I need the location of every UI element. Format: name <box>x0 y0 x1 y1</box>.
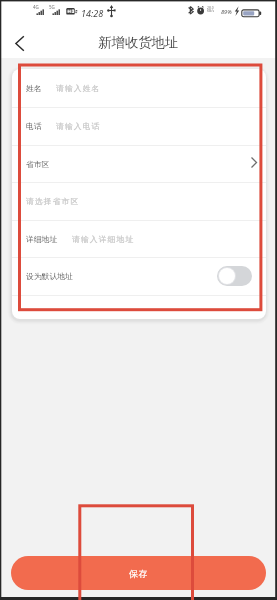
staticText: 4G <box>33 4 39 10</box>
staticText: 请输入电话 <box>56 121 101 131</box>
button[interactable]: 详细地址 <box>12 220 266 257</box>
button[interactable]: 请选择省市区 <box>12 182 266 220</box>
button[interactable]: 电话 <box>12 107 266 145</box>
staticText: 新增收货地址 <box>98 34 179 51</box>
staticText: 请输入姓名 <box>56 83 101 93</box>
button[interactable]: 保存 <box>11 556 266 590</box>
staticText: 电话 <box>26 121 42 131</box>
staticText: 请输入详细地址 <box>72 234 135 244</box>
button[interactable]: 返回 <box>5 29 34 58</box>
button[interactable]: 设为默认地址 <box>217 266 252 286</box>
staticText: 详细地址 <box>26 234 58 244</box>
staticText: 28.0 KB/s <box>207 5 215 13</box>
staticText: 请选择省市区 <box>26 196 80 206</box>
staticText: 设为默认地址 <box>26 271 73 281</box>
button[interactable]: 姓名 <box>12 69 266 107</box>
staticText: 省市区 <box>26 159 50 169</box>
staticText: 5G <box>49 4 55 10</box>
button[interactable]: 省市区 <box>12 145 266 182</box>
staticText: 姓名 <box>26 83 42 93</box>
staticText: 保存 <box>129 568 149 579</box>
staticText: 89% <box>221 8 232 16</box>
staticText: 14:28 <box>81 7 104 19</box>
